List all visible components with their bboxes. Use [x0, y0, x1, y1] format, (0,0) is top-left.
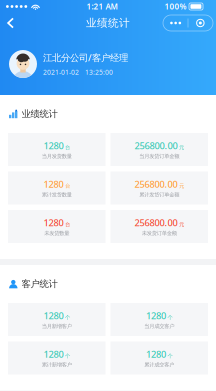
staticText: 元: [179, 144, 184, 151]
button[interactable]: Back: [0, 13, 33, 33]
staticText: 业绩统计: [22, 108, 58, 120]
staticText: 当月新增客户: [42, 323, 72, 329]
staticText: 累计发货数量: [42, 191, 72, 198]
staticText: 个: [167, 314, 172, 321]
staticText: 累计新增客户: [42, 361, 72, 368]
staticText: 未发货订单金额: [142, 230, 177, 236]
staticText: 1280: [43, 216, 63, 229]
staticText: 个: [167, 353, 172, 359]
staticText: 当月发货数量: [42, 153, 72, 159]
button[interactable]: More options: [163, 15, 216, 31]
staticText: 客户统计: [22, 278, 58, 290]
staticText: 业绩统计: [86, 16, 130, 29]
staticText: 1280: [146, 348, 166, 360]
staticText: 1:21 AM: [87, 1, 118, 12]
staticText: 台: [65, 221, 70, 228]
staticText: 256800.00: [134, 178, 177, 190]
staticText: 2021-01-02 13:25:00: [43, 68, 113, 77]
staticText: 累计成交客户: [144, 361, 174, 368]
staticText: 当月发货订单金额: [139, 153, 179, 159]
staticText: 元: [179, 183, 184, 189]
staticText: 1280: [43, 348, 63, 360]
staticText: 1280: [43, 309, 63, 322]
staticText: 未发货数量: [44, 230, 69, 236]
staticText: 台: [65, 183, 70, 189]
staticText: 江北分公司/客户经理: [43, 51, 128, 64]
staticText: 当月成交客户: [144, 323, 174, 329]
staticText: 元: [179, 221, 184, 228]
staticText: 1280: [43, 139, 63, 152]
staticText: 100%: [164, 1, 186, 12]
staticText: 1280: [146, 309, 166, 322]
staticText: 累计发货订单金额: [139, 191, 179, 198]
staticText: 1280: [43, 178, 63, 190]
staticText: 个: [65, 353, 70, 359]
staticText: 台: [65, 144, 70, 151]
staticText: 256800.00: [134, 216, 177, 229]
staticText: 256800.00: [134, 139, 177, 152]
staticText: 个: [65, 314, 70, 321]
